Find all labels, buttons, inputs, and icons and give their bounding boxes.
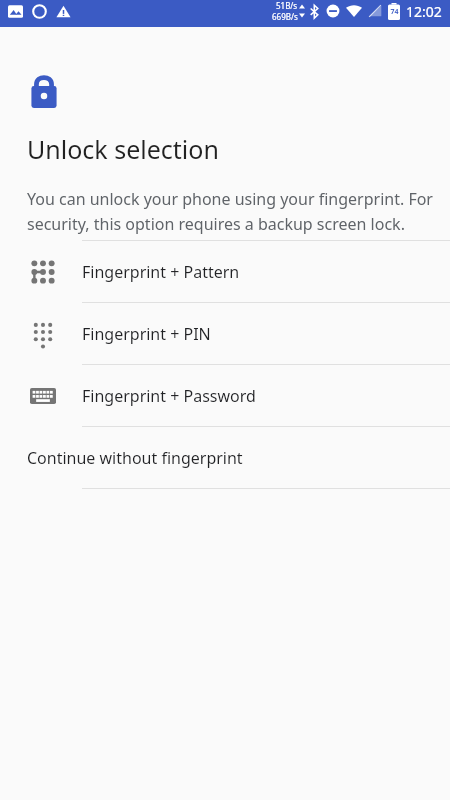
staticText: You can unlock your phone using your fin… [27, 188, 436, 234]
staticText: Fingerprint + PIN [82, 323, 211, 345]
button[interactable]: Fingerprint + Password [0, 365, 450, 426]
staticText: Fingerprint + Password [82, 385, 256, 407]
button[interactable]: Fingerprint + PIN [0, 303, 450, 364]
staticText: 74 [390, 7, 399, 17]
staticText: Unlock selection [27, 132, 219, 166]
staticText: Fingerprint + Pattern [82, 261, 240, 283]
button[interactable]: Continue without fingerprint [0, 427, 450, 488]
button[interactable]: Fingerprint + Pattern [0, 241, 450, 302]
staticText: 669B/s [272, 11, 298, 22]
staticText: 12:02 [406, 2, 442, 21]
staticText: 51B/s [276, 0, 298, 11]
staticText: Continue without fingerprint [27, 447, 243, 469]
